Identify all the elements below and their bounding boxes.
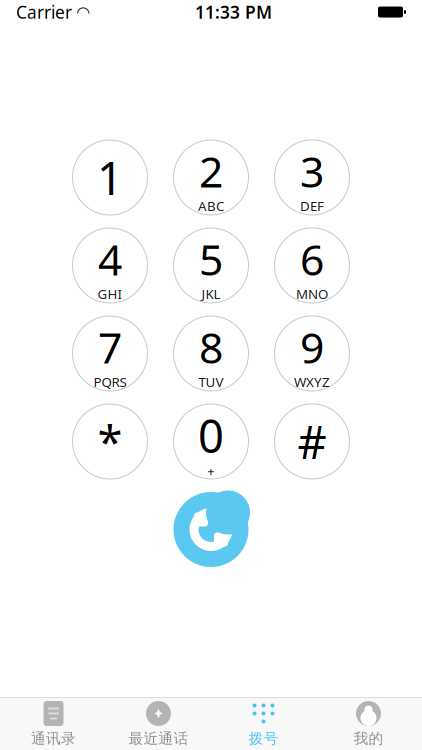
button[interactable]: Call (173, 492, 248, 567)
button[interactable]: 8 (173, 316, 248, 391)
button[interactable]: 2 (173, 140, 248, 215)
staticText: 7 (98, 319, 122, 375)
staticText: Carrier (16, 0, 72, 23)
staticText: 2 (199, 143, 223, 199)
button[interactable]: 4 (72, 228, 147, 303)
button[interactable]: 3 (274, 140, 349, 215)
staticText: 5 (199, 231, 223, 287)
staticText: WXYZ (294, 373, 330, 391)
staticText: 1 (97, 147, 123, 208)
staticText: 我的 (353, 729, 383, 747)
staticText: DEF (300, 197, 324, 215)
staticText: 6 (300, 231, 324, 287)
button[interactable]: * (72, 404, 147, 479)
staticText: 最近通话 (128, 729, 188, 747)
button[interactable]: 通讯录 (1, 700, 106, 748)
staticText: MNO (296, 285, 328, 303)
button[interactable]: # (274, 404, 349, 479)
button[interactable]: 1 (72, 140, 147, 215)
staticText: 3 (300, 143, 324, 199)
button[interactable]: 拨号 (211, 700, 316, 748)
button[interactable]: 7 (72, 316, 147, 391)
button[interactable]: 最近通话 (106, 700, 211, 748)
staticText: 4 (98, 231, 122, 287)
staticText: 9 (300, 319, 324, 375)
button[interactable]: 6 (274, 228, 349, 303)
staticText: PQRS (93, 373, 126, 391)
button[interactable]: 我的 (316, 700, 421, 748)
button[interactable]: 0 (173, 404, 248, 479)
button[interactable]: 5 (173, 228, 248, 303)
staticText: JKL (201, 285, 220, 303)
staticText: * (97, 411, 122, 472)
staticText: 通讯录 (31, 729, 76, 747)
staticText: + (207, 464, 214, 479)
button[interactable]: 9 (274, 316, 349, 391)
staticText: TUV (198, 373, 223, 391)
staticText: GHI (97, 285, 122, 303)
staticText: # (297, 411, 326, 472)
staticText: 11:33 PM (195, 0, 272, 23)
staticText: 拨号 (248, 729, 278, 747)
staticText: 8 (199, 319, 223, 375)
staticText: ◠ (77, 3, 89, 21)
staticText: ABC (198, 197, 224, 215)
staticText: 0 (198, 405, 224, 466)
